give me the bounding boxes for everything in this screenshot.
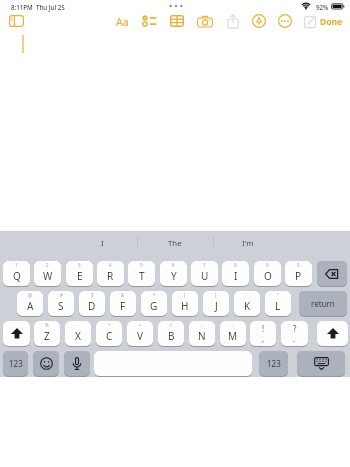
button[interactable]: ?: [281, 321, 308, 347]
button[interactable]: 3: [66, 261, 93, 287]
button[interactable]: [94, 351, 252, 377]
button[interactable]: !: [250, 321, 276, 347]
button[interactable]: [33, 351, 59, 377]
staticText: V: [137, 329, 143, 343]
button[interactable]: 123: [3, 351, 28, 377]
button[interactable]: [3, 321, 30, 347]
button[interactable]: 7: [191, 261, 218, 287]
staticText: 8: [234, 262, 237, 268]
button[interactable]: &: [110, 291, 136, 317]
button[interactable]: =: [127, 321, 153, 347]
button[interactable]: [304, 14, 318, 28]
button[interactable]: (: [172, 291, 198, 317]
button[interactable]: @: [17, 291, 43, 317]
button[interactable]: [197, 16, 213, 28]
button[interactable]: [301, 2, 311, 10]
staticText: E: [77, 269, 83, 283]
button[interactable]: I'm: [213, 234, 282, 252]
button[interactable]: -: [65, 321, 91, 347]
staticText: ': [246, 292, 248, 298]
button[interactable]: :: [220, 321, 246, 347]
button[interactable]: I: [68, 234, 137, 252]
staticText: F: [120, 299, 126, 313]
button[interactable]: 1: [3, 261, 30, 287]
button[interactable]: /: [158, 321, 184, 347]
staticText: /: [170, 322, 172, 328]
staticText: M: [228, 329, 238, 343]
staticText: P: [295, 269, 302, 283]
button[interactable]: Aa: [113, 14, 132, 29]
staticText: G: [150, 299, 158, 313]
staticText: *: [153, 292, 156, 298]
button[interactable]: [317, 261, 347, 287]
staticText: Y: [171, 269, 177, 283]
staticText: ,: [262, 333, 265, 344]
button[interactable]: ): [203, 291, 229, 317]
button[interactable]: *: [141, 291, 167, 317]
staticText: 3: [78, 262, 81, 268]
button[interactable]: [170, 15, 184, 27]
staticText: $: [91, 292, 94, 298]
button[interactable]: 9: [254, 261, 281, 287]
button[interactable]: [252, 14, 266, 28]
staticText: =: [139, 322, 142, 328]
staticText: Q: [13, 269, 21, 283]
button[interactable]: [142, 15, 157, 27]
button[interactable]: [227, 14, 239, 29]
staticText: L: [275, 299, 281, 313]
staticText: Done: [320, 16, 343, 28]
button[interactable]: 6: [160, 261, 187, 287]
staticText: 123: [9, 358, 23, 369]
button[interactable]: +: [96, 321, 122, 347]
staticText: J: [215, 299, 218, 313]
button[interactable]: 5: [128, 261, 155, 287]
staticText: I: [234, 269, 238, 283]
staticText: ): [215, 292, 217, 298]
staticText: O: [264, 269, 272, 283]
button[interactable]: 123: [259, 351, 288, 377]
button[interactable]: [9, 15, 24, 27]
staticText: :: [232, 322, 234, 328]
staticText: 6: [172, 262, 175, 268]
button[interactable]: ': [234, 291, 260, 317]
button[interactable]: #: [48, 291, 74, 317]
staticText: 5: [140, 262, 143, 268]
staticText: &: [121, 292, 125, 298]
staticText: S: [58, 299, 64, 313]
staticText: 7: [203, 262, 206, 268]
button[interactable]: The: [140, 234, 210, 252]
staticText: K: [244, 299, 251, 313]
staticText: D: [88, 299, 96, 313]
staticText: R: [107, 269, 114, 283]
button[interactable]: 4: [97, 261, 124, 287]
button[interactable]: 8: [222, 261, 249, 287]
button[interactable]: [278, 14, 292, 28]
button[interactable]: [64, 351, 90, 377]
button[interactable]: [297, 351, 345, 377]
staticText: return: [311, 298, 335, 309]
button[interactable]: return: [299, 291, 347, 317]
button[interactable]: 0: [285, 261, 312, 287]
staticText: 4: [109, 262, 112, 268]
button[interactable]: ": [265, 291, 291, 317]
button[interactable]: ;: [189, 321, 215, 347]
button[interactable]: [168, 4, 184, 8]
staticText: 0: [297, 262, 300, 268]
button[interactable]: [331, 3, 347, 10]
staticText: ": [277, 292, 279, 298]
staticText: +: [108, 322, 111, 328]
staticText: 9: [266, 262, 269, 268]
button[interactable]: $: [79, 291, 105, 317]
staticText: U: [201, 269, 209, 283]
button[interactable]: 2: [34, 261, 61, 287]
staticText: N: [198, 329, 206, 343]
button[interactable]: Done: [317, 14, 346, 29]
staticText: 123: [267, 358, 281, 369]
staticText: C: [106, 329, 113, 343]
button[interactable]: %: [34, 321, 60, 347]
staticText: A: [27, 299, 34, 313]
staticText: .: [293, 333, 296, 344]
staticText: 1: [15, 262, 18, 268]
button[interactable]: [317, 321, 348, 347]
staticText: The: [168, 238, 182, 249]
